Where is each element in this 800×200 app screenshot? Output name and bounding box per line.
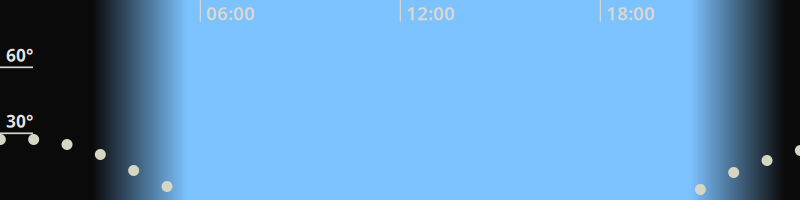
staticText: 60° (6, 43, 33, 66)
staticText: 12:00 (406, 1, 455, 25)
staticText: 06:00 (206, 1, 255, 25)
staticText: 30° (6, 109, 33, 132)
staticText: 18:00 (606, 1, 655, 25)
button[interactable]: Hourly temperature forecast chart (0, 0, 800, 200)
